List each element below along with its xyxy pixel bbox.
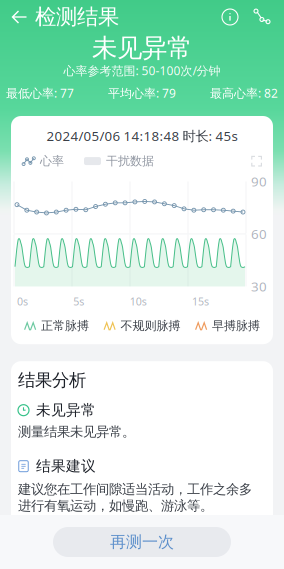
staticText: 平均心率: 79 — [108, 85, 176, 101]
staticText: 60 — [251, 225, 267, 243]
staticText: 90 — [251, 173, 267, 190]
staticText: 最低心率: 77 — [6, 85, 74, 101]
staticText: 测量结果未见异常。 — [18, 423, 135, 440]
staticText: 30 — [251, 278, 267, 295]
button[interactable]: 检测结果 — [35, 0, 119, 36]
staticText: 10s — [130, 294, 147, 309]
button[interactable]: 说明 — [214, 1, 246, 33]
staticText: 再测一次 — [110, 532, 174, 552]
staticText: 心率参考范围: 50-100次/分钟 — [63, 62, 220, 78]
staticText: 最高心率: 82 — [210, 85, 278, 101]
staticText: 检测结果 — [35, 4, 119, 30]
staticText: 结果分析 — [18, 369, 86, 391]
staticText: 未见异常 — [92, 32, 192, 63]
staticText: 干扰数据 — [106, 154, 154, 168]
staticText: 未见异常 — [36, 401, 96, 419]
button[interactable]: 返回 — [0, 1, 35, 32]
staticText: 正常脉搏 — [41, 318, 89, 333]
staticText: 早搏脉搏 — [212, 318, 260, 333]
staticText: 心率 — [40, 154, 64, 168]
staticText: 2024/05/06 14:18:48 时长: 45s — [46, 127, 237, 145]
button[interactable]: 分享 — [246, 1, 284, 32]
staticText: 5s — [73, 294, 84, 309]
staticText: 不规则脉搏 — [120, 318, 180, 333]
staticText: 0s — [17, 294, 28, 309]
button[interactable]: 再测一次 — [53, 527, 231, 557]
staticText: 建议您在工作间隙适当活动，工作之余多进行有氧运动，如慢跑、游泳等。 — [18, 481, 252, 514]
staticText: 结果建议 — [36, 457, 96, 475]
staticText: 15s — [192, 294, 209, 309]
